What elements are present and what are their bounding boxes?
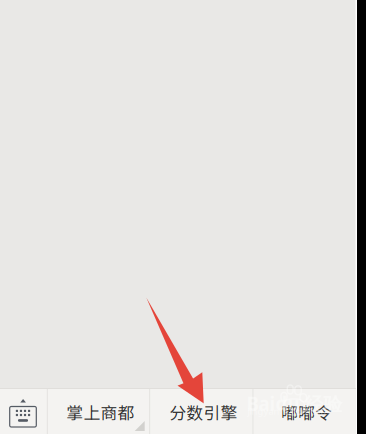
staticText: Baidu 经验 — [246, 391, 342, 416]
button[interactable]: Switch keyboard — [0, 389, 47, 434]
button[interactable]: 分数引擎 — [150, 389, 253, 434]
staticText: jingyan.baidu.com — [247, 405, 329, 417]
button[interactable]: 嘟嘟令 — [253, 389, 355, 434]
staticText: 分数引擎 — [169, 400, 237, 424]
staticText: 嘟嘟令 — [281, 400, 332, 424]
button[interactable]: 掌上商都 — [48, 389, 149, 434]
staticText: 掌上商都 — [67, 400, 135, 424]
